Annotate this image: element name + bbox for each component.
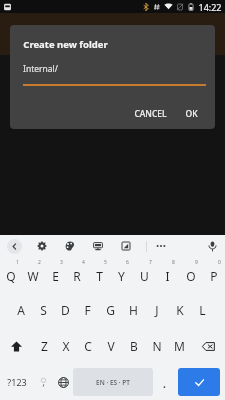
button[interactable]: G [99,292,122,328]
staticText: D [61,302,70,318]
staticText: 8 [172,259,175,266]
staticText: U [140,268,149,284]
staticText: S [40,302,47,318]
button[interactable]: U [133,257,156,292]
button[interactable]: W [22,257,44,292]
button[interactable]: V [99,328,122,364]
staticText: O [186,268,196,284]
button[interactable]: B [122,328,145,364]
button[interactable]: Y [110,257,133,292]
staticText: A [17,302,25,318]
staticText: I [165,268,170,284]
staticText: 5 [104,259,107,266]
staticText: EN · ES · PT [96,378,130,387]
button[interactable]: X [55,328,77,364]
staticText: Internal/ [23,63,58,75]
button[interactable]: More options [147,235,175,257]
button[interactable]: Shift [0,328,33,364]
staticText: E [52,268,59,284]
button[interactable]: F [76,292,99,328]
staticText: M [174,338,185,354]
staticText: 6 [126,259,129,266]
button[interactable]: Settings [28,235,56,257]
staticText: X [62,338,70,354]
button[interactable]: A [10,292,32,328]
staticText: J [155,302,159,318]
staticText: W [27,268,39,284]
staticText: . [163,377,166,391]
button[interactable]: Voice input [199,235,225,257]
staticText: Z [41,338,48,354]
button[interactable]: D [54,292,76,328]
button[interactable]: N [145,328,168,364]
button[interactable]: S [32,292,54,328]
staticText: R [73,268,81,284]
staticText: 3 [60,259,63,266]
staticText: 4 [82,259,85,266]
staticText: G [106,302,115,318]
staticText: 1 [16,259,19,266]
staticText: 2 [38,259,41,266]
staticText: Q [6,268,16,284]
staticText: 9 [195,259,198,266]
button[interactable]: ?123 [0,364,33,400]
button[interactable]: Clipboard [84,235,112,257]
button[interactable]: Emoji and comma [33,364,53,400]
button[interactable]: Z [33,328,55,364]
staticText: V [107,338,115,354]
button[interactable]: Back [0,235,28,257]
staticText: ?123 [7,376,27,388]
staticText: L [199,302,206,318]
button[interactable]: M [168,328,191,364]
staticText: P [210,268,218,284]
staticText: Y [118,268,125,284]
button[interactable]: P [202,257,225,292]
button[interactable]: Enter [178,368,220,396]
button[interactable]: Q [0,257,22,292]
staticText: T [96,268,103,284]
staticText: CANCEL [134,108,167,120]
staticText: C [84,338,92,354]
staticText: 14:22 [198,1,222,13]
button[interactable]: I [156,257,179,292]
button[interactable]: J [145,292,168,328]
staticText: Create new folder [23,38,108,51]
button[interactable]: R [66,257,88,292]
button[interactable]: OK [181,105,202,123]
staticText: F [84,302,91,318]
staticText: 7 [149,259,152,266]
button[interactable]: Resize [112,235,140,257]
button[interactable]: O [179,257,202,292]
button[interactable]: H [122,292,145,328]
staticText: OK [185,108,198,120]
button[interactable]: EN · ES · PT [73,368,153,396]
staticText: 0 [218,259,221,266]
staticText: B [130,338,138,354]
button[interactable]: CANCEL [130,105,171,123]
button[interactable]: K [168,292,191,328]
button[interactable]: Change language [53,364,73,400]
button[interactable]: Themes [56,235,84,257]
button[interactable]: C [77,328,99,364]
staticText: K [176,302,184,318]
button[interactable]: Backspace [191,328,225,364]
button[interactable]: T [88,257,110,292]
button[interactable]: L [191,292,214,328]
staticText: N [152,338,162,354]
staticText: H [129,302,138,318]
button[interactable]: . [153,364,175,400]
button[interactable]: E [44,257,66,292]
